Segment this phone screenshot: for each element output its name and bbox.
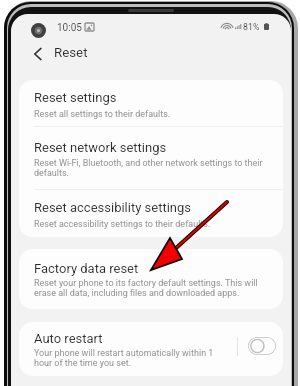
staticText: Your phone will restart automatically wi… — [34, 348, 224, 368]
button[interactable]: Auto restart toggle — [248, 337, 276, 355]
staticText: Auto restart — [34, 331, 103, 346]
button[interactable]: Reset accessibility settings — [19, 190, 283, 237]
staticText: Reset Wi-Fi, Bluetooth, and other networ… — [34, 158, 278, 178]
staticText: Reset your phone to its factory default … — [34, 278, 278, 298]
button[interactable]: Back — [28, 45, 46, 63]
button[interactable]: Reset network settings — [19, 127, 283, 189]
button[interactable]: Reset settings — [19, 80, 283, 126]
staticText: Reset all settings to their defaults. — [34, 109, 278, 120]
staticText: Reset settings — [34, 90, 117, 105]
button[interactable]: Factory data reset — [19, 249, 283, 309]
staticText: Factory data reset — [34, 261, 139, 276]
staticText: 81% — [243, 22, 260, 32]
button[interactable]: Auto restart — [19, 322, 283, 376]
staticText: 10:05 — [57, 22, 82, 34]
staticText: Reset accessibility settings — [34, 200, 192, 215]
staticText: Reset network settings — [34, 140, 167, 155]
staticText: Reset — [54, 45, 88, 61]
staticText: Reset accessibility settings to their de… — [34, 219, 278, 230]
